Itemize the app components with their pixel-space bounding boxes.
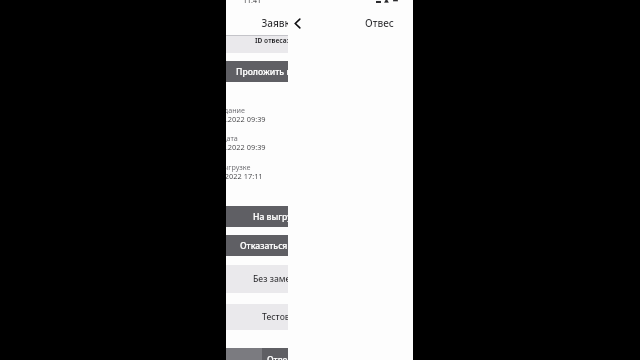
staticText: 12.10.2022 09:39 bbox=[226, 142, 266, 152]
staticText: 12.10.2022 09:39 bbox=[226, 114, 266, 124]
staticText: Отказаться от рейса bbox=[240, 240, 326, 252]
staticText: 11:41 bbox=[243, 0, 261, 4]
button[interactable]: Отказаться от рейса bbox=[226, 235, 371, 256]
button[interactable]: Проложить маршрут bbox=[226, 61, 371, 82]
button[interactable]: На выгрузку bbox=[226, 206, 371, 227]
button[interactable] bbox=[226, 348, 371, 360]
button[interactable]: Back bbox=[288, 14, 306, 32]
button[interactable]: Без замечаний bbox=[226, 265, 371, 293]
staticText: Отвес bbox=[267, 354, 292, 360]
button[interactable]: ID отвеса: 145823 bbox=[226, 36, 371, 53]
button[interactable]: Тестовая bbox=[226, 304, 371, 330]
staticText: Проложить маршрут bbox=[236, 66, 325, 78]
staticText: Без замечаний bbox=[253, 273, 317, 285]
staticText: Тестовая bbox=[262, 311, 300, 323]
staticText: 12.10.2022 17:11 bbox=[226, 171, 263, 181]
staticText: ▃ ▲ ▬ bbox=[376, 0, 402, 3]
staticText: Время на выгрузке bbox=[226, 162, 251, 172]
staticText: Время создание bbox=[226, 105, 245, 115]
staticText: Отвес bbox=[365, 16, 394, 30]
staticText: Заявка bbox=[226, 16, 372, 30]
button[interactable]: Отвес bbox=[262, 348, 372, 360]
staticText: ID отвеса: 145823 bbox=[255, 36, 313, 45]
staticText: На выгрузку bbox=[253, 211, 306, 223]
staticText: Плановая дата bbox=[226, 133, 238, 143]
